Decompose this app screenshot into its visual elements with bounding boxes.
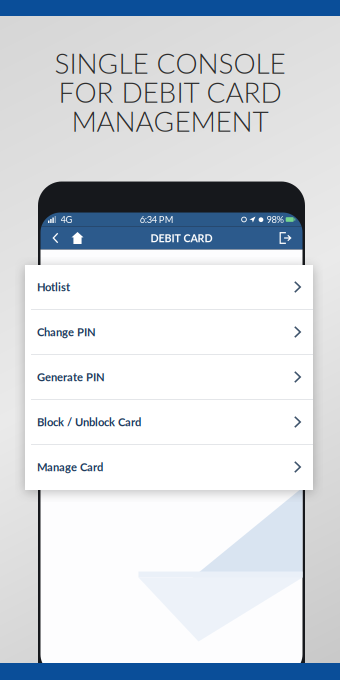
staticText: Manage Card bbox=[37, 460, 103, 474]
staticText: Block / Unblock Card bbox=[37, 415, 141, 429]
staticText: FOR DEBIT CARD bbox=[58, 75, 281, 109]
button[interactable]: Hotlist bbox=[25, 265, 313, 310]
button[interactable]: Log out bbox=[273, 226, 297, 249]
button[interactable]: Change PIN bbox=[25, 310, 313, 355]
staticText: DEBIT CARD bbox=[150, 232, 212, 244]
staticText: 4G bbox=[60, 214, 72, 225]
staticText: Generate PIN bbox=[37, 370, 105, 384]
staticText: MANAGEMENT bbox=[71, 104, 268, 138]
button[interactable]: Generate PIN bbox=[25, 355, 313, 400]
staticText: 6:34 PM bbox=[140, 214, 174, 225]
button[interactable]: Manage Card bbox=[25, 445, 313, 490]
button[interactable]: Back bbox=[45, 226, 65, 249]
button[interactable]: Home bbox=[65, 226, 89, 249]
staticText: 98% bbox=[266, 214, 283, 225]
button[interactable]: Block / Unblock Card bbox=[25, 400, 313, 445]
staticText: Hotlist bbox=[37, 280, 70, 294]
staticText: SINGLE CONSOLE bbox=[54, 46, 285, 80]
staticText: Change PIN bbox=[37, 325, 96, 339]
